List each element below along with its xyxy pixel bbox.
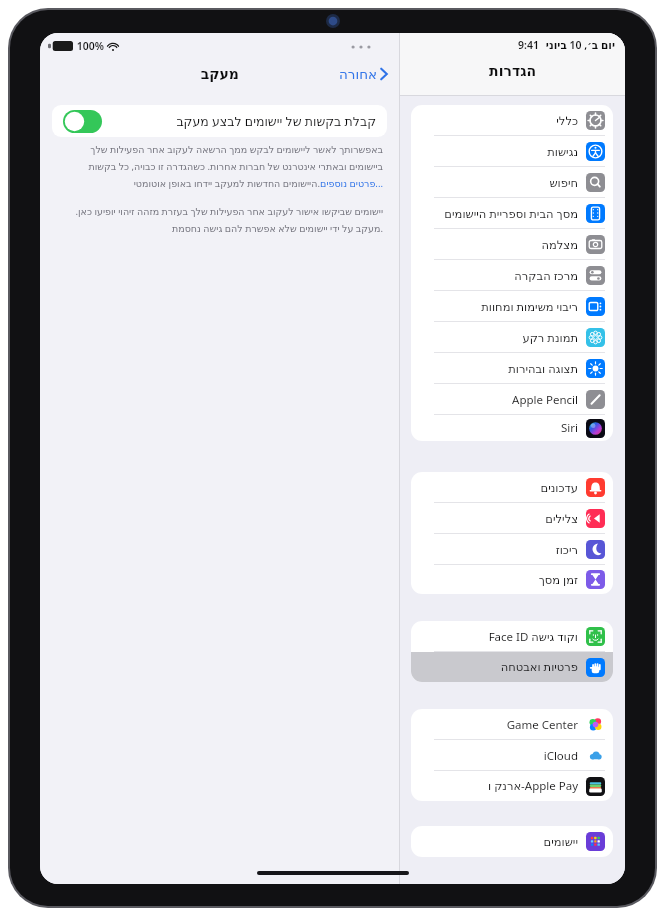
staticText: מעקב [200,66,239,82]
button[interactable]: תמונת רקע [411,322,613,353]
button[interactable]: Apple Pencil [411,384,613,415]
staticText: ריכוז [555,543,578,556]
staticText: עדכונים [540,481,578,494]
staticText: מצלמה [541,238,578,251]
staticText: ריבוי משימות ומחוות [481,299,578,315]
staticText: תמונת רקע [522,330,578,346]
staticText: 100% [76,39,104,53]
staticText: היישומים החדשות למעקב יידחו באופן אוטומט… [131,177,320,190]
button[interactable]: ריבוי משימות ומחוות [411,291,613,322]
button[interactable]: מצלמה [411,229,613,260]
button[interactable]: מרכז הבקרה [411,260,613,291]
staticText: מרכז הבקרה [514,268,578,284]
staticText: Apple Pencil [512,392,578,408]
button[interactable]: ארנק ו-Apple Pay [411,771,613,801]
staticText: יישומים שביקשו אישור לעקוב אחר הפעילות ש… [56,205,383,218]
staticText: מסך הבית וספריית היישומים [444,206,578,222]
button[interactable]: פרטיות ואבטחה [411,652,613,682]
button[interactable]: iCloud [411,740,613,771]
staticText: כללי [556,114,578,127]
button[interactable]: Siri [411,415,613,441]
button[interactable]: ריכוז [411,534,613,565]
button[interactable]: חיפוש [411,167,613,198]
staticText: נגישות [547,145,578,158]
staticText: Game Center [506,717,578,733]
staticText: זמן מסך [538,572,578,588]
staticText: 9:41 [518,38,539,52]
staticText: פרטיות ואבטחה [500,659,578,675]
staticText: תצוגה ובהירות [508,361,578,377]
staticText: מעקב על ידי יישומים שלא אפשרת להם גישה נ… [171,222,383,235]
staticText: הגדרות [489,63,536,79]
staticText: פרטים נוספים... [320,177,383,190]
button[interactable]: קבלת בקשות של יישומים לבצע מעקב [52,105,387,137]
staticText: Face ID וקוד גישה [488,629,578,645]
button[interactable]: אחורה [336,64,391,84]
staticText: יום ב׳, 10 ביוני [545,38,615,52]
staticText: חיפוש [549,176,578,189]
staticText: יישומים [543,835,578,848]
staticText: Siri [561,420,578,436]
staticText: צלילים [545,512,578,525]
button[interactable]: צלילים [411,503,613,534]
button[interactable]: מסך הבית וספריית היישומים [411,198,613,229]
button[interactable]: Game Center [411,709,613,740]
button[interactable]: עדכונים [411,472,613,503]
button[interactable]: יישומים [411,826,613,857]
button[interactable]: תצוגה ובהירות [411,353,613,384]
staticText: אחורה [339,66,377,82]
button[interactable]: כללי [411,105,613,136]
staticText: ארנק ו-Apple Pay [488,778,578,794]
button[interactable]: Face ID וקוד גישה [411,621,613,652]
staticText: באפשרותך לאשר ליישומים לבקש ממך הרשאה לע… [90,143,383,156]
button[interactable]: More options [339,37,383,57]
button[interactable]: נגישות [411,136,613,167]
staticText: ביישומים ובאתרי אינטרנט של חברות אחרות. … [88,160,383,173]
button[interactable]: זמן מסך [411,565,613,594]
staticText: iCloud [543,748,578,764]
staticText: קבלת בקשות של יישומים לבצע מעקב [176,113,376,130]
